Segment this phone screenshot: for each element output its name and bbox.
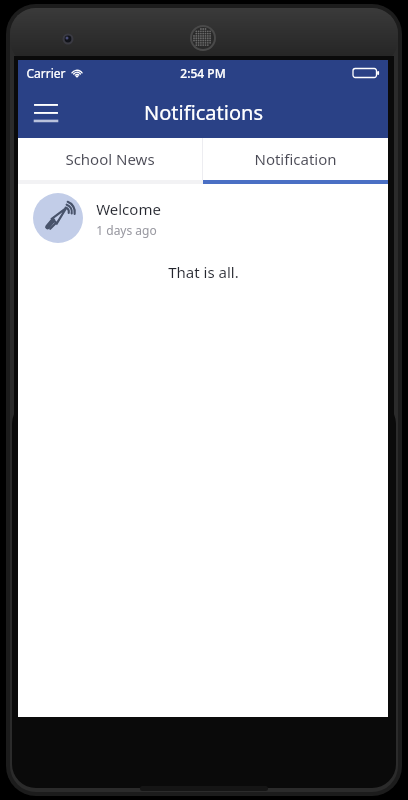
staticText: Carrier [26,65,66,81]
staticText: School News [65,149,155,169]
staticText: Notifications [144,99,263,126]
button[interactable]: Notification [203,138,388,180]
button[interactable]: Open navigation menu [28,94,64,130]
staticText: Notification [254,149,337,169]
staticText: That is all. [168,262,239,282]
button[interactable]: Welcome [18,184,388,252]
staticText: 1 days ago [96,222,157,238]
button[interactable]: School News [18,138,202,180]
staticText: 2:54 PM [180,65,226,81]
staticText: Welcome [96,199,161,219]
